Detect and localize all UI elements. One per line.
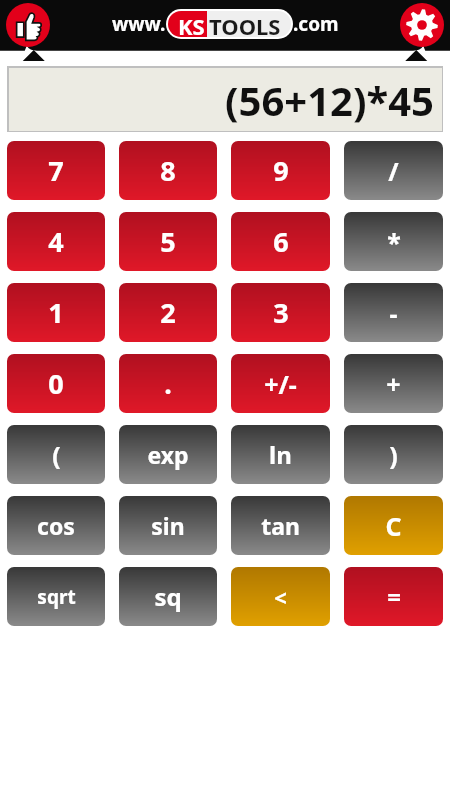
staticText: www. [112,11,166,37]
staticText: exp [147,439,189,470]
staticText: 3 [273,294,289,331]
button[interactable]: - [344,283,443,342]
button[interactable]: / [344,141,443,200]
staticText: 1 [48,294,64,331]
staticText: ) [389,438,398,472]
button[interactable]: 2 [119,283,217,342]
button[interactable]: < [231,567,330,626]
staticText: 7 [48,152,64,189]
staticText: = [387,580,401,613]
button[interactable]: exp [119,425,217,484]
button[interactable]: + [344,354,443,413]
button[interactable]: ln [231,425,330,484]
staticText: cos [37,510,75,541]
button[interactable]: sq [119,567,217,626]
staticText: +/- [264,367,297,401]
button[interactable]: = [344,567,443,626]
staticText: * [387,225,401,259]
staticText: . [164,365,172,402]
button[interactable]: ( [7,425,105,484]
button[interactable]: 7 [7,141,105,200]
button[interactable]: Rate this app [6,3,50,47]
staticText: ( [52,438,61,472]
staticText: 0 [48,365,64,402]
button[interactable]: 1 [7,283,105,342]
staticText: + [386,367,401,401]
button[interactable]: (56+12)*45 [9,68,442,131]
button[interactable]: sqrt [7,567,105,626]
button[interactable]: . [119,354,217,413]
button[interactable]: C [344,496,443,555]
button[interactable]: 3 [231,283,330,342]
staticText: < [274,582,287,612]
staticText: 8 [160,152,176,189]
button[interactable]: 8 [119,141,217,200]
staticText: 6 [273,223,289,260]
staticText: sin [151,510,185,541]
staticText: 2 [160,294,176,331]
staticText: (56+12)*45 [225,73,434,127]
staticText: TOOLS [209,11,281,37]
button[interactable]: 9 [231,141,330,200]
button[interactable]: +/- [231,354,330,413]
button[interactable]: 0 [7,354,105,413]
staticText: sqrt [37,584,76,610]
button[interactable]: 4 [7,212,105,271]
staticText: C [385,509,402,543]
staticText: / [388,154,399,188]
staticText: .com [293,11,339,37]
button[interactable]: 5 [119,212,217,271]
staticText: ln [269,438,292,471]
button[interactable]: ) [344,425,443,484]
staticText: 5 [160,223,176,260]
staticText: 9 [273,152,289,189]
staticText: 4 [48,223,64,260]
button[interactable]: cos [7,496,105,555]
staticText: - [389,296,398,330]
staticText: KS [178,11,205,37]
staticText: sq [154,580,182,613]
button[interactable]: sin [119,496,217,555]
button[interactable]: Settings [400,3,444,47]
staticText: tan [261,510,300,541]
button[interactable]: * [344,212,443,271]
button[interactable]: 6 [231,212,330,271]
button[interactable]: tan [231,496,330,555]
